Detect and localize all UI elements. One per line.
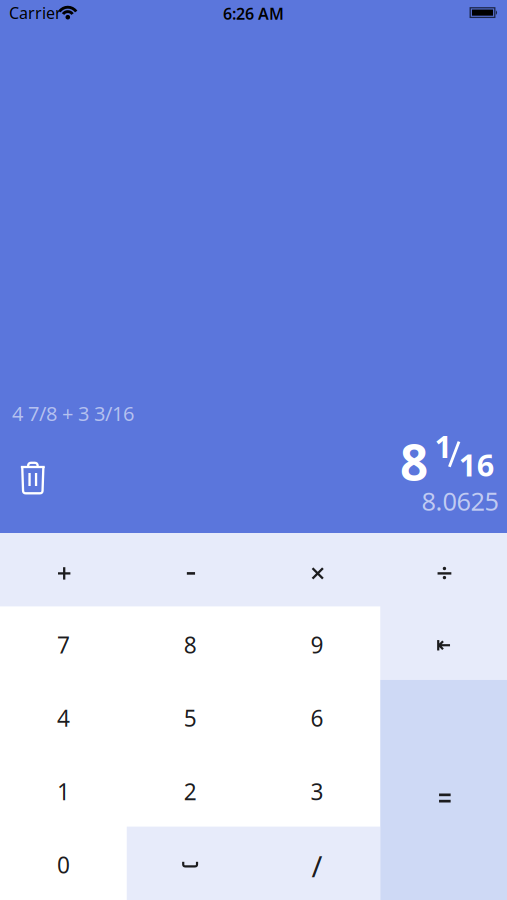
button[interactable]: 0 xyxy=(0,827,127,900)
staticText: 3 xyxy=(310,776,323,806)
staticText: 7 xyxy=(57,629,70,660)
button[interactable]: Equals xyxy=(380,680,507,900)
staticText: 4 xyxy=(57,703,70,733)
button[interactable]: 6 xyxy=(253,680,380,753)
button[interactable]: 1 xyxy=(0,753,127,827)
button[interactable]: Add xyxy=(0,533,127,606)
button[interactable]: / xyxy=(253,827,380,900)
staticText: 0 xyxy=(57,850,70,880)
staticText: 2 xyxy=(184,776,197,806)
button[interactable]: Subtract xyxy=(127,533,254,606)
staticText: 4 7/8 + 3 3/16 xyxy=(12,400,134,427)
button[interactable]: 3 xyxy=(253,753,380,827)
button[interactable]: Clear xyxy=(11,456,55,500)
staticText: 8 xyxy=(184,629,197,660)
button[interactable]: 2 xyxy=(127,753,254,827)
button[interactable]: Divide xyxy=(380,533,507,606)
staticText: 1 xyxy=(434,426,452,466)
staticText: 8 xyxy=(400,429,428,494)
staticText: 5 xyxy=(184,703,197,733)
button[interactable]: Space xyxy=(127,827,254,900)
button[interactable]: 9 xyxy=(253,606,380,680)
staticText: 9 xyxy=(310,629,323,660)
staticText: 16 xyxy=(459,444,495,485)
staticText: / xyxy=(311,846,322,885)
button[interactable]: 8 xyxy=(127,606,254,680)
staticText: 6:26 AM xyxy=(223,3,284,24)
button[interactable]: 5 xyxy=(127,680,254,753)
staticText: 1 xyxy=(57,776,70,806)
button[interactable]: Backspace xyxy=(380,606,507,680)
button[interactable]: Multiply xyxy=(253,533,380,606)
staticText: 6 xyxy=(310,703,323,733)
button[interactable]: 4 xyxy=(0,680,127,753)
staticText: 8.0625 xyxy=(421,484,498,518)
staticText: Carrier xyxy=(9,2,62,23)
button[interactable]: 7 xyxy=(0,606,127,680)
